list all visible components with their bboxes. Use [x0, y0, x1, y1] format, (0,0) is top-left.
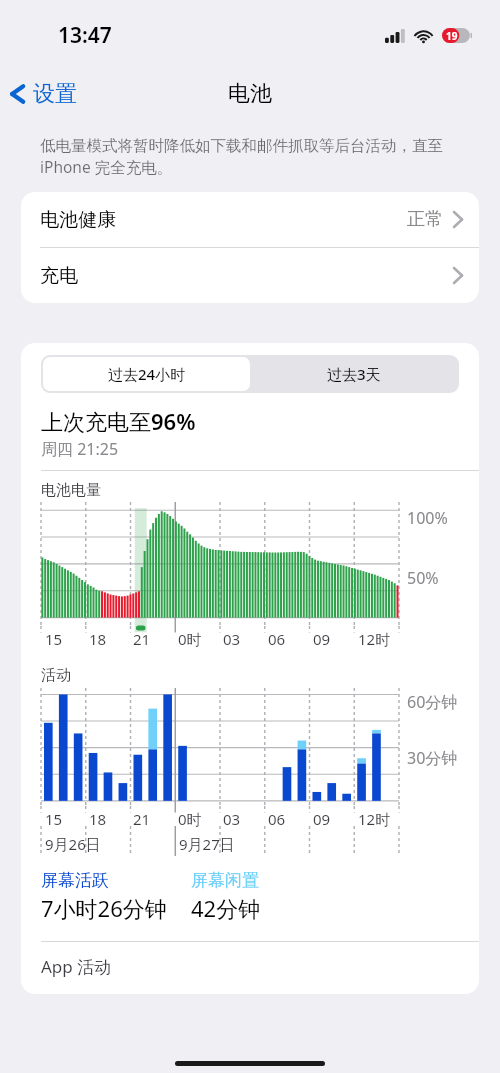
- staticText: 电池电量: [41, 481, 101, 500]
- staticText: 09: [313, 629, 331, 649]
- staticText: App 活动: [41, 955, 112, 978]
- staticText: 100%: [407, 507, 448, 529]
- staticText: 06: [268, 629, 286, 649]
- staticText: 21: [133, 629, 151, 649]
- staticText: 7小时26分钟: [41, 893, 167, 923]
- staticText: 充电: [40, 264, 78, 288]
- staticText: 9月27日: [179, 834, 235, 854]
- staticText: 15: [45, 629, 63, 649]
- staticText: 活动: [41, 666, 71, 685]
- button[interactable]: 充电: [21, 248, 479, 303]
- staticText: 18: [89, 629, 107, 649]
- staticText: 12时: [358, 809, 391, 829]
- staticText: 周四 21:25: [41, 438, 119, 460]
- staticText: 0时: [178, 629, 202, 649]
- staticText: 过去24小时: [108, 364, 186, 384]
- staticText: 9月26日: [45, 834, 101, 854]
- button[interactable]: 设置: [0, 76, 87, 112]
- button[interactable]: 过去3天: [250, 357, 457, 391]
- staticText: 19: [446, 29, 458, 43]
- staticText: 03: [223, 809, 241, 829]
- staticText: 03: [223, 629, 241, 649]
- staticText: 过去3天: [327, 364, 381, 384]
- staticText: 15: [45, 809, 63, 829]
- staticText: 正常: [407, 208, 443, 231]
- staticText: 09: [313, 809, 331, 829]
- staticText: 电池健康: [40, 208, 116, 232]
- staticText: 设置: [33, 80, 77, 108]
- button[interactable]: 过去24小时: [43, 357, 250, 391]
- staticText: 21: [133, 809, 151, 829]
- staticText: 0时: [178, 809, 202, 829]
- staticText: 18: [89, 809, 107, 829]
- staticText: 上次充电至96%: [41, 406, 196, 436]
- staticText: 屏幕闲置: [191, 870, 259, 891]
- staticText: 13:47: [58, 21, 112, 50]
- staticText: 50%: [407, 567, 439, 589]
- staticText: 42分钟: [191, 893, 261, 923]
- staticText: 电池: [228, 80, 272, 108]
- staticText: 30分钟: [407, 747, 458, 769]
- staticText: 屏幕活跃: [41, 870, 109, 891]
- staticText: 06: [268, 809, 286, 829]
- button[interactable]: 电池健康: [21, 192, 479, 247]
- staticText: 低电量模式将暂时降低如下载和邮件抓取等后台活动，直至 iPhone 完全充电。: [40, 134, 466, 178]
- staticText: 12时: [358, 629, 391, 649]
- staticText: 60分钟: [407, 691, 458, 713]
